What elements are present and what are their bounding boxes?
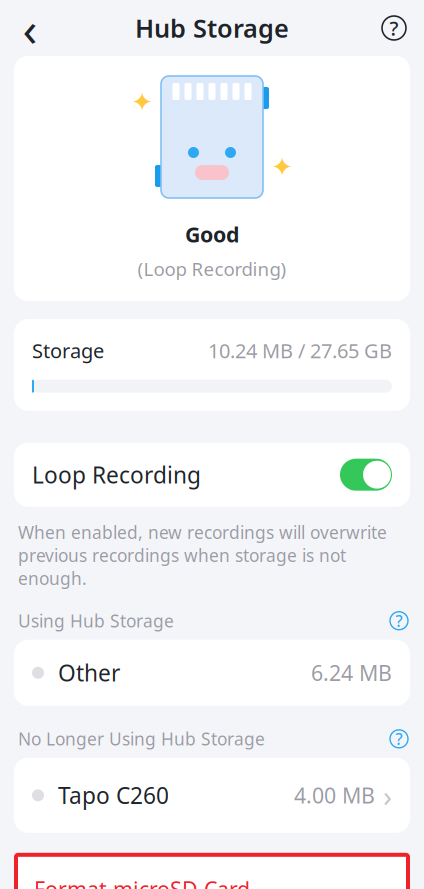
- staticText: ?: [395, 728, 402, 749]
- staticText: ?: [389, 15, 398, 41]
- button[interactable]: Other: [0, 640, 424, 706]
- staticText: Tapo C260: [58, 780, 169, 810]
- button[interactable]: Loop Recording: [0, 443, 424, 507]
- staticText: Storage: [32, 337, 104, 364]
- staticText: ✦: [131, 87, 153, 117]
- staticText: Hub Storage: [135, 11, 289, 45]
- staticText: ‹: [22, 0, 37, 60]
- staticText: 4.00 MB: [294, 781, 375, 809]
- staticText: Loop Recording: [32, 460, 201, 490]
- button[interactable]: Tapo C260: [0, 758, 424, 833]
- staticText: Other: [58, 658, 120, 688]
- staticText: When enabled, new recordings will overwr…: [18, 521, 387, 590]
- button[interactable]: Format microSD Card: [0, 855, 424, 889]
- staticText: 10.24 MB / 27.65 GB: [208, 337, 392, 364]
- staticText: Using Hub Storage: [18, 609, 174, 632]
- button[interactable]: About Using Hub Storage: [384, 606, 414, 636]
- button[interactable]: Back: [8, 6, 52, 50]
- staticText: ›: [383, 776, 392, 815]
- staticText: ✦: [271, 152, 293, 182]
- staticText: (Loop Recording): [137, 256, 286, 281]
- staticText: Good: [185, 220, 239, 248]
- staticText: No Longer Using Hub Storage: [18, 727, 265, 750]
- staticText: ?: [395, 610, 402, 631]
- button[interactable]: Help: [372, 6, 416, 50]
- button[interactable]: About No Longer Using Hub Storage: [384, 724, 414, 754]
- staticText: 6.24 MB: [311, 659, 392, 687]
- staticText: Format microSD Card: [34, 875, 250, 889]
